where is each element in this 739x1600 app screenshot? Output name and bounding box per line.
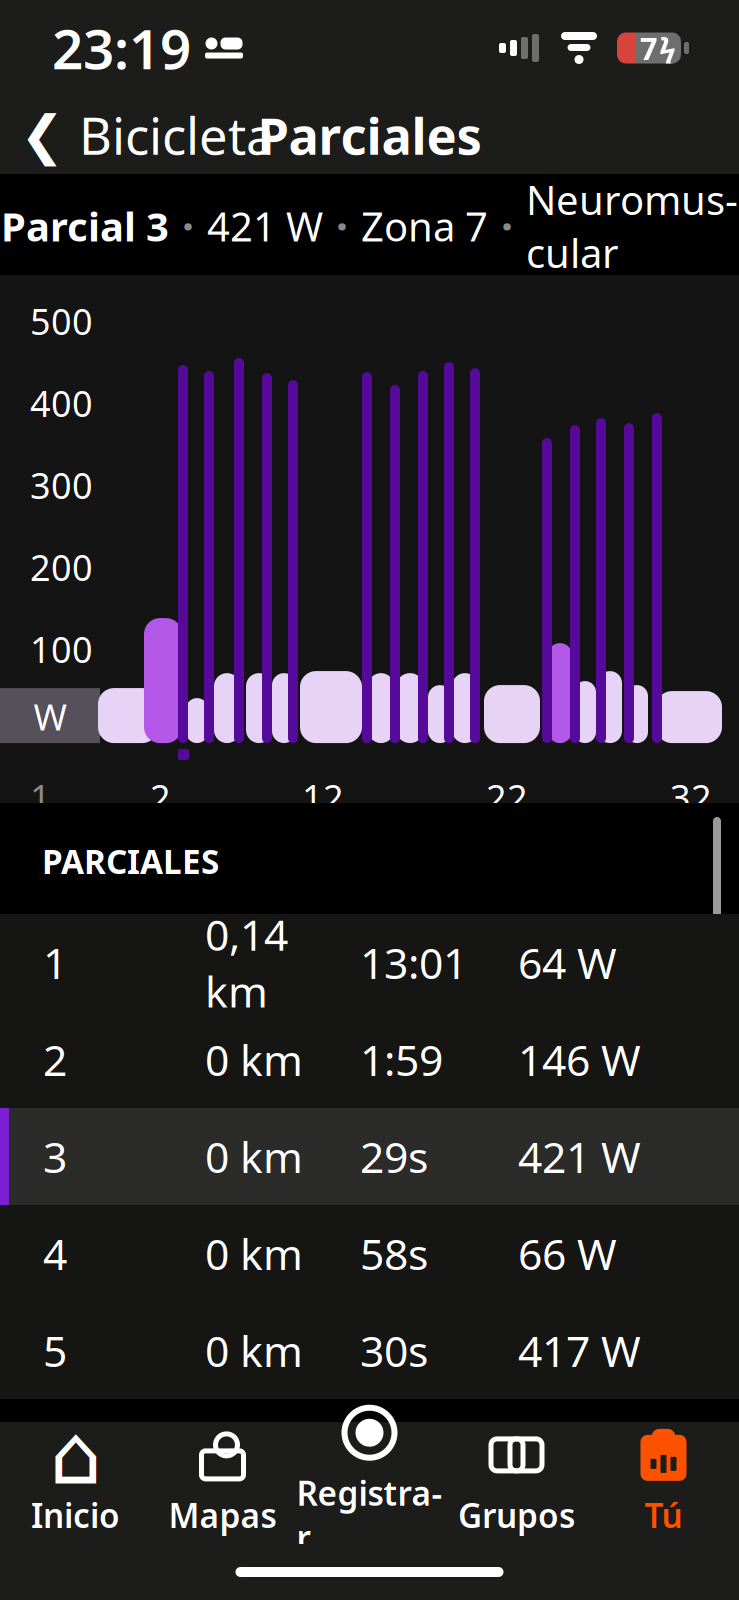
staticText: · xyxy=(182,198,194,254)
staticText: 0 km xyxy=(205,1128,303,1185)
staticText: 421 W xyxy=(518,1128,641,1185)
staticText: 400 xyxy=(30,379,93,427)
staticText: ⌂ xyxy=(49,1408,101,1502)
staticText: Tú xyxy=(644,1493,682,1537)
staticText: 500 xyxy=(30,297,93,345)
staticText: 64 W xyxy=(518,934,617,991)
staticText: 300 xyxy=(30,461,93,509)
staticText: 1:59 xyxy=(360,1031,443,1088)
staticText: 4 xyxy=(43,1225,67,1282)
staticText: Parciales xyxy=(257,101,481,169)
button[interactable]: Mapas xyxy=(149,1422,296,1544)
staticText: ϟ xyxy=(659,28,676,68)
button[interactable]: Tú xyxy=(590,1422,737,1544)
staticText: 146 W xyxy=(518,1031,641,1088)
staticText: 23:19 xyxy=(52,12,191,84)
button[interactable]: ❮ xyxy=(0,96,290,174)
staticText: Bicicleta xyxy=(79,101,274,169)
button[interactable]: 3 xyxy=(0,1108,739,1205)
staticText: 29s xyxy=(360,1128,428,1185)
staticText: 12 xyxy=(302,773,344,821)
staticText: 0 km xyxy=(205,1322,303,1379)
staticText: 13:01 xyxy=(360,934,467,991)
staticText: ❮ xyxy=(20,105,65,165)
button[interactable]: ⌂ xyxy=(2,1422,149,1544)
staticText: 417 W xyxy=(518,1322,641,1379)
staticText: W xyxy=(33,693,66,740)
button[interactable]: Registrar xyxy=(296,1422,443,1544)
staticText: 2 xyxy=(150,773,171,821)
staticText: 0 km xyxy=(205,1225,303,1282)
staticText: Inicio xyxy=(31,1493,120,1537)
staticText: 200 xyxy=(30,543,93,591)
staticText: PARCIALES xyxy=(42,839,219,883)
button[interactable]: 1 xyxy=(0,914,739,1011)
staticText: 30s xyxy=(360,1322,428,1379)
staticText: Mapas xyxy=(168,1493,276,1537)
staticText: 0,14 km xyxy=(205,906,288,1019)
button[interactable]: 2 xyxy=(0,1011,739,1108)
button[interactable]: 4 xyxy=(0,1205,739,1302)
staticText: 58s xyxy=(360,1225,428,1282)
staticText: Grupos xyxy=(458,1493,575,1537)
staticText: 1 xyxy=(43,934,67,991)
staticText: 32 xyxy=(670,773,712,821)
staticText: Neuromuscular xyxy=(526,173,738,279)
staticText: 66 W xyxy=(518,1225,617,1282)
staticText: 100 xyxy=(30,625,93,673)
staticText: Registrar xyxy=(296,1471,442,1559)
staticText: 2 xyxy=(43,1031,67,1088)
staticText: · xyxy=(336,198,348,254)
staticText: 421 W xyxy=(207,199,323,252)
staticText: 7 xyxy=(640,28,658,68)
staticText: 1 xyxy=(30,773,51,821)
staticText: 5 xyxy=(43,1322,67,1379)
staticText: · xyxy=(501,198,513,254)
staticText: 0 km xyxy=(205,1031,303,1088)
button[interactable]: 5 xyxy=(0,1302,739,1399)
button[interactable]: Grupos xyxy=(443,1422,590,1544)
staticText: Zona 7 xyxy=(361,199,488,252)
staticText: Parcial 3 xyxy=(1,199,169,252)
staticText: 22 xyxy=(486,773,528,821)
staticText: 3 xyxy=(43,1128,67,1185)
